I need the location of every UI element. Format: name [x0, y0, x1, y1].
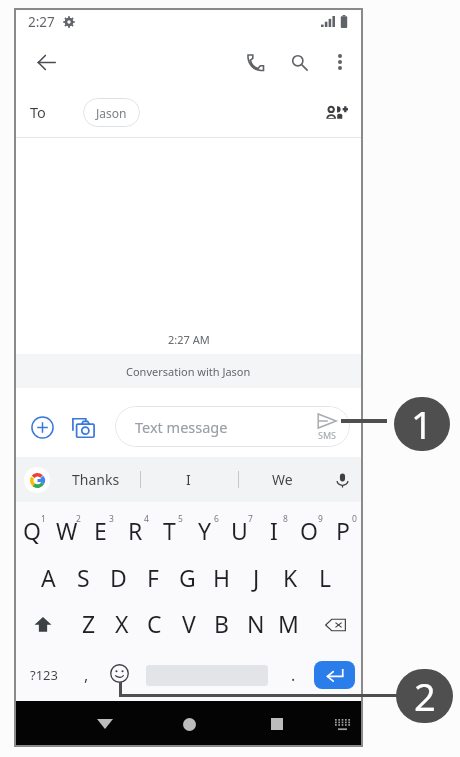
button[interactable]: Space: [139, 649, 283, 701]
staticText: Jason: [96, 105, 127, 121]
staticText: 2:27: [28, 13, 55, 31]
staticText: R: [128, 515, 143, 546]
staticText: F: [147, 562, 159, 593]
button[interactable]: L: [308, 553, 343, 602]
button[interactable]: Thanks: [54, 457, 138, 502]
button[interactable]: Call: [233, 40, 277, 84]
button[interactable]: Camera: [67, 411, 100, 444]
staticText: M: [278, 608, 299, 639]
button[interactable]: T: [152, 506, 187, 555]
staticText: K: [283, 562, 298, 593]
button[interactable]: U: [222, 506, 257, 555]
button[interactable]: Keyboard: [317, 701, 367, 747]
staticText: ,: [84, 664, 89, 686]
button[interactable]: D: [101, 553, 136, 602]
button[interactable]: ?123: [14, 649, 73, 701]
staticText: X: [115, 608, 129, 639]
staticText: T: [163, 515, 176, 546]
staticText: I: [270, 515, 278, 546]
staticText: C: [147, 608, 162, 639]
staticText: Q: [23, 515, 41, 546]
button[interactable]: Enter: [306, 649, 363, 701]
button[interactable]: X: [105, 599, 138, 648]
staticText: E: [94, 515, 107, 546]
staticText: L: [319, 562, 332, 593]
button[interactable]: I: [256, 506, 291, 555]
button[interactable]: S: [66, 553, 101, 602]
button[interactable]: V: [172, 599, 205, 648]
staticText: 7: [248, 513, 253, 525]
button[interactable]: Voice input: [329, 467, 355, 493]
button[interactable]: Attach: [26, 411, 59, 444]
button[interactable]: Back: [78, 701, 132, 747]
button[interactable]: P: [325, 506, 360, 555]
button[interactable]: Callout 2: [396, 669, 453, 723]
button[interactable]: R: [118, 506, 153, 555]
button[interactable]: C: [138, 599, 171, 648]
button[interactable]: Y: [187, 506, 222, 555]
button[interactable]: Emoji: [99, 649, 139, 701]
button[interactable]: ,: [73, 649, 99, 701]
button[interactable]: G: [170, 553, 205, 602]
button[interactable]: Callout 1: [394, 397, 450, 451]
button[interactable]: More options: [321, 43, 359, 81]
button[interactable]: Search: [277, 40, 321, 84]
button[interactable]: Q: [14, 506, 49, 555]
button[interactable]: Recents: [250, 701, 304, 747]
button[interactable]: Home: [162, 701, 216, 747]
staticText: Thanks: [72, 470, 120, 489]
staticText: V: [182, 608, 196, 639]
button[interactable]: Back: [24, 40, 68, 84]
button[interactable]: Text message: [115, 406, 350, 447]
staticText: P: [336, 515, 350, 546]
staticText: N: [247, 608, 265, 639]
staticText: Conversation with Jason: [126, 364, 251, 379]
staticText: .: [291, 664, 296, 686]
staticText: 2: [76, 513, 81, 525]
button[interactable]: J: [239, 553, 274, 602]
staticText: Text message: [135, 417, 228, 437]
button[interactable]: .: [282, 649, 304, 701]
button[interactable]: Jason: [83, 98, 140, 127]
staticText: W: [56, 515, 78, 546]
staticText: J: [253, 562, 260, 593]
button[interactable]: N: [239, 599, 272, 648]
staticText: 8: [283, 513, 288, 525]
staticText: 9: [318, 513, 323, 525]
button[interactable]: A: [31, 553, 66, 602]
staticText: O: [300, 515, 318, 546]
button[interactable]: M: [272, 599, 305, 648]
staticText: ?123: [30, 666, 58, 684]
staticText: 1: [41, 513, 46, 525]
button[interactable]: W: [49, 506, 84, 555]
staticText: B: [214, 608, 229, 639]
button[interactable]: O: [291, 506, 326, 555]
button[interactable]: I: [141, 457, 236, 502]
staticText: 3: [109, 513, 114, 525]
button[interactable]: B: [205, 599, 238, 648]
button[interactable]: Backspace: [306, 600, 364, 649]
staticText: I: [186, 470, 191, 489]
staticText: G: [179, 562, 196, 593]
staticText: SMS: [318, 429, 337, 441]
button[interactable]: K: [273, 553, 308, 602]
staticText: 5: [178, 513, 183, 525]
button[interactable]: Add people: [320, 95, 354, 129]
staticText: Y: [198, 515, 212, 546]
staticText: Z: [82, 608, 96, 639]
button[interactable]: H: [204, 553, 239, 602]
staticText: U: [231, 515, 248, 546]
button[interactable]: F: [135, 553, 170, 602]
staticText: A: [41, 562, 56, 593]
button[interactable]: We: [239, 457, 325, 502]
staticText: To: [30, 102, 46, 122]
staticText: 2: [414, 670, 436, 722]
staticText: We: [272, 470, 293, 489]
button[interactable]: Shift: [14, 600, 72, 649]
button[interactable]: E: [83, 506, 118, 555]
button[interactable]: Z: [72, 599, 105, 648]
staticText: H: [213, 562, 231, 593]
button[interactable]: Google: [24, 467, 50, 493]
staticText: 6: [214, 513, 219, 525]
staticText: S: [77, 562, 90, 593]
